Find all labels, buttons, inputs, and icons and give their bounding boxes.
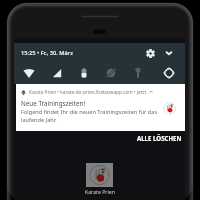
staticText: 15:25 • Fr., 30. März (21, 49, 73, 57)
button[interactable]: Mobile signal (50, 66, 64, 80)
button[interactable]: Expand quick settings (162, 46, 176, 60)
staticText: Neue Trainingszeiten! (21, 99, 86, 108)
button[interactable]: Rotation locked (104, 66, 118, 80)
button[interactable]: Flashlight (131, 66, 145, 80)
staticText: Karate Prien (85, 188, 115, 195)
staticText: Karate Prien • karate-do-prien.firebasea… (29, 89, 147, 95)
staticText: Folgend findet Ihr die neuen Trainingsze… (21, 108, 158, 124)
button[interactable]: Settings (143, 46, 157, 60)
button[interactable]: Auto rotate (162, 66, 176, 80)
button[interactable]: ALLE LÖSCHEN (137, 134, 182, 142)
button[interactable]: Battery saver (77, 66, 91, 80)
staticText: ALLE LÖSCHEN (137, 134, 182, 142)
button[interactable]: Karate Prien • karate-do-prien.firebasea… (16, 84, 185, 131)
button[interactable]: Wi-Fi (22, 66, 36, 80)
